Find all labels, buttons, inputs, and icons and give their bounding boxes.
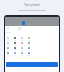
- staticText: affecting a new project: [19, 8, 46, 11]
- staticText: Your phone: [24, 3, 40, 7]
- button[interactable]: [6, 62, 58, 67]
